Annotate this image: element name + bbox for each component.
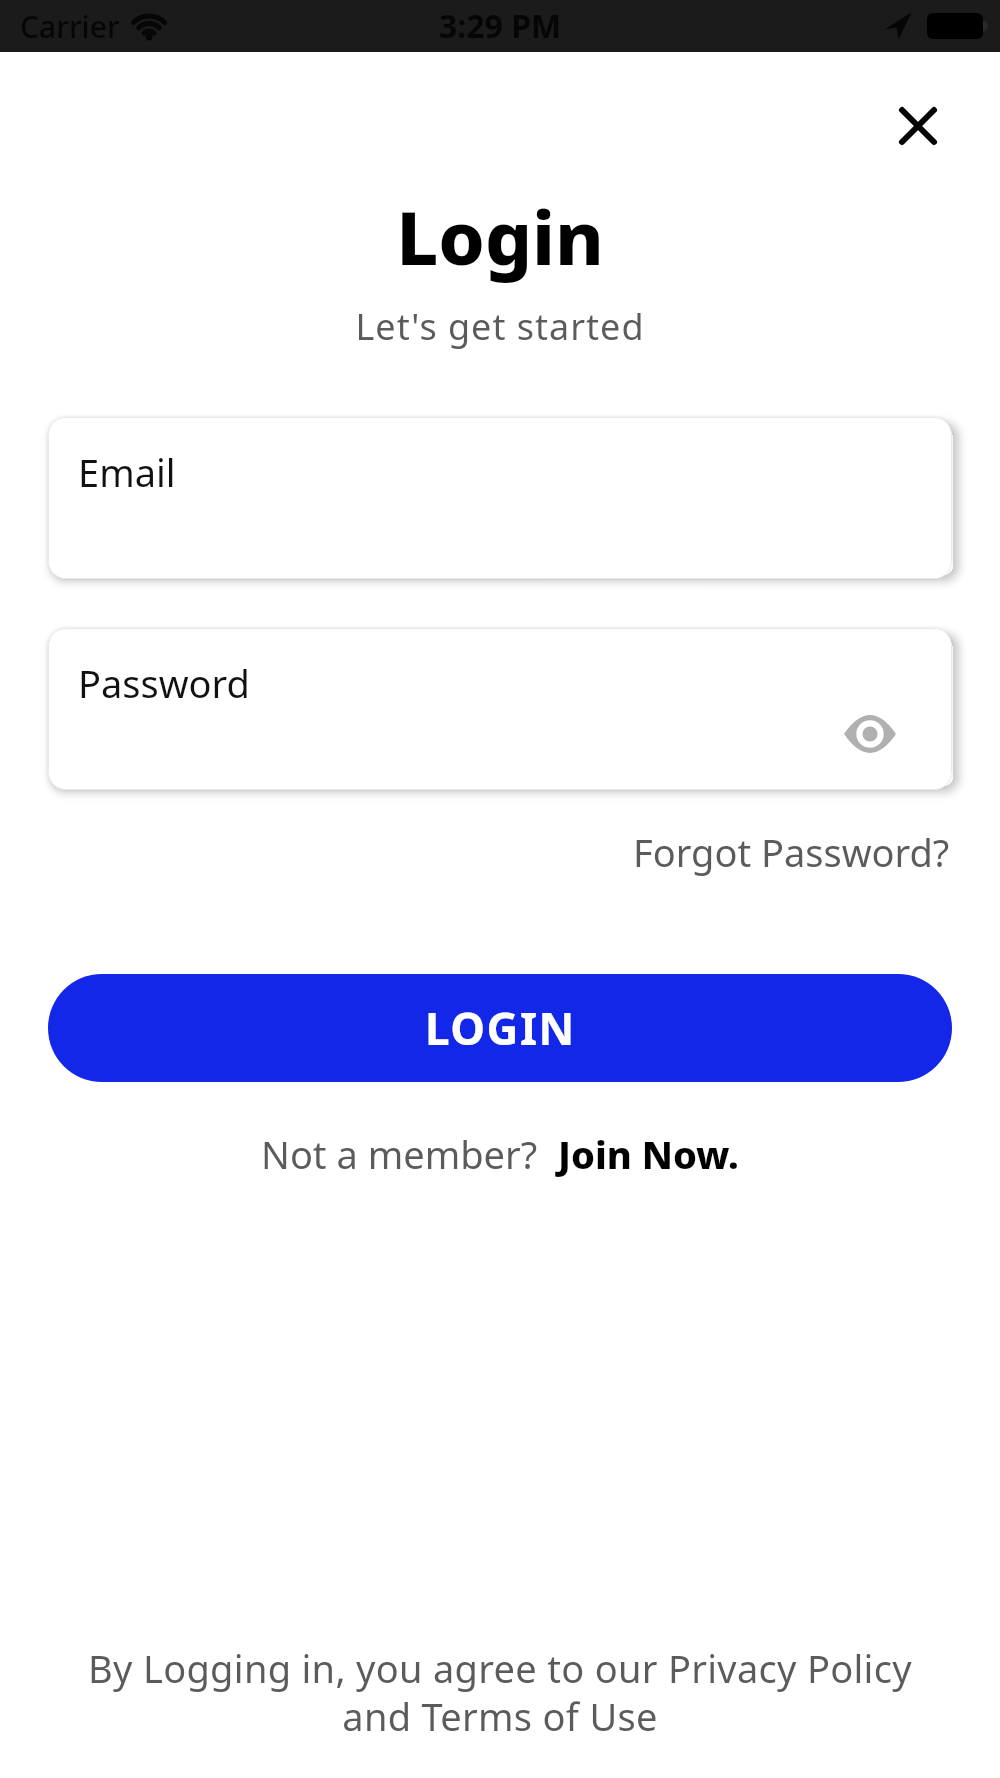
staticText: LOGIN (425, 998, 576, 1058)
staticText: Carrier (20, 6, 120, 47)
button[interactable]: Forgot Password? (633, 826, 950, 878)
staticText: By Logging in, you agree to our Privacy … (0, 1642, 1000, 1742)
staticText: Join Now. (558, 1128, 739, 1180)
staticText: Email (78, 446, 176, 498)
button[interactable]: Password (48, 628, 952, 790)
staticText: Password (78, 657, 250, 709)
button[interactable]: LOGIN (48, 974, 952, 1082)
staticText: Forgot Password? (633, 826, 950, 878)
staticText: 3:29 PM (439, 4, 562, 48)
staticText: Not a member? (261, 1128, 538, 1180)
button[interactable] (890, 98, 946, 154)
staticText: Let's get started (0, 302, 1000, 351)
button[interactable]: Email (48, 417, 952, 579)
staticText: Login (0, 186, 1000, 287)
button[interactable]: Join Now. (558, 1128, 739, 1180)
